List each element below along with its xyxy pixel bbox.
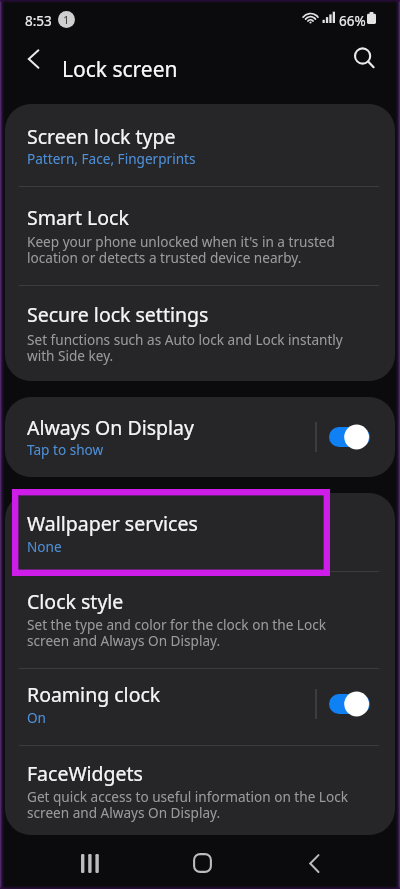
button[interactable]: Toggle Always On Display bbox=[323, 418, 379, 456]
button[interactable]: Navigate up bbox=[12, 37, 56, 81]
button[interactable]: Recents bbox=[34, 838, 146, 888]
staticText: Set the type and color for the clock on … bbox=[27, 615, 371, 650]
button[interactable]: Smart Lock bbox=[5, 187, 395, 285]
button[interactable]: Search bbox=[341, 35, 389, 83]
button[interactable]: Wallpaper services bbox=[5, 493, 395, 571]
button[interactable]: Screen lock type bbox=[5, 104, 395, 186]
staticText: None bbox=[27, 537, 62, 556]
staticText: FaceWidgets bbox=[27, 760, 143, 787]
button[interactable]: Toggle Roaming clock bbox=[323, 685, 379, 723]
button[interactable]: FaceWidgets bbox=[5, 746, 395, 835]
staticText: 66% bbox=[339, 12, 366, 30]
staticText: Clock style bbox=[27, 588, 124, 615]
button[interactable]: Roaming clock bbox=[5, 669, 395, 745]
button[interactable]: Always On Display bbox=[5, 397, 395, 477]
staticText: Lock screen bbox=[62, 55, 178, 84]
staticText: Tap to show bbox=[27, 440, 104, 459]
button[interactable]: Secure lock settings bbox=[5, 286, 395, 381]
staticText: Roaming clock bbox=[27, 681, 161, 708]
staticText: Pattern, Face, Fingerprints bbox=[27, 149, 196, 168]
staticText: Smart Lock bbox=[27, 204, 129, 231]
button[interactable]: Home bbox=[146, 838, 258, 888]
staticText: Wallpaper services bbox=[27, 510, 198, 537]
staticText: Secure lock settings bbox=[27, 301, 209, 328]
staticText: Screen lock type bbox=[27, 123, 176, 150]
staticText: Get quick access to useful information o… bbox=[27, 787, 371, 822]
staticText: Set functions such as Auto lock and Lock… bbox=[27, 330, 371, 365]
staticText: 8:53 bbox=[25, 12, 52, 30]
button[interactable]: Clock style bbox=[5, 572, 395, 668]
staticText: On bbox=[27, 708, 47, 727]
staticText: 1 bbox=[63, 12, 70, 27]
button[interactable]: Back bbox=[258, 838, 370, 888]
staticText: Keep your phone unlocked when it's in a … bbox=[27, 232, 371, 267]
staticText: Always On Display bbox=[27, 414, 194, 441]
